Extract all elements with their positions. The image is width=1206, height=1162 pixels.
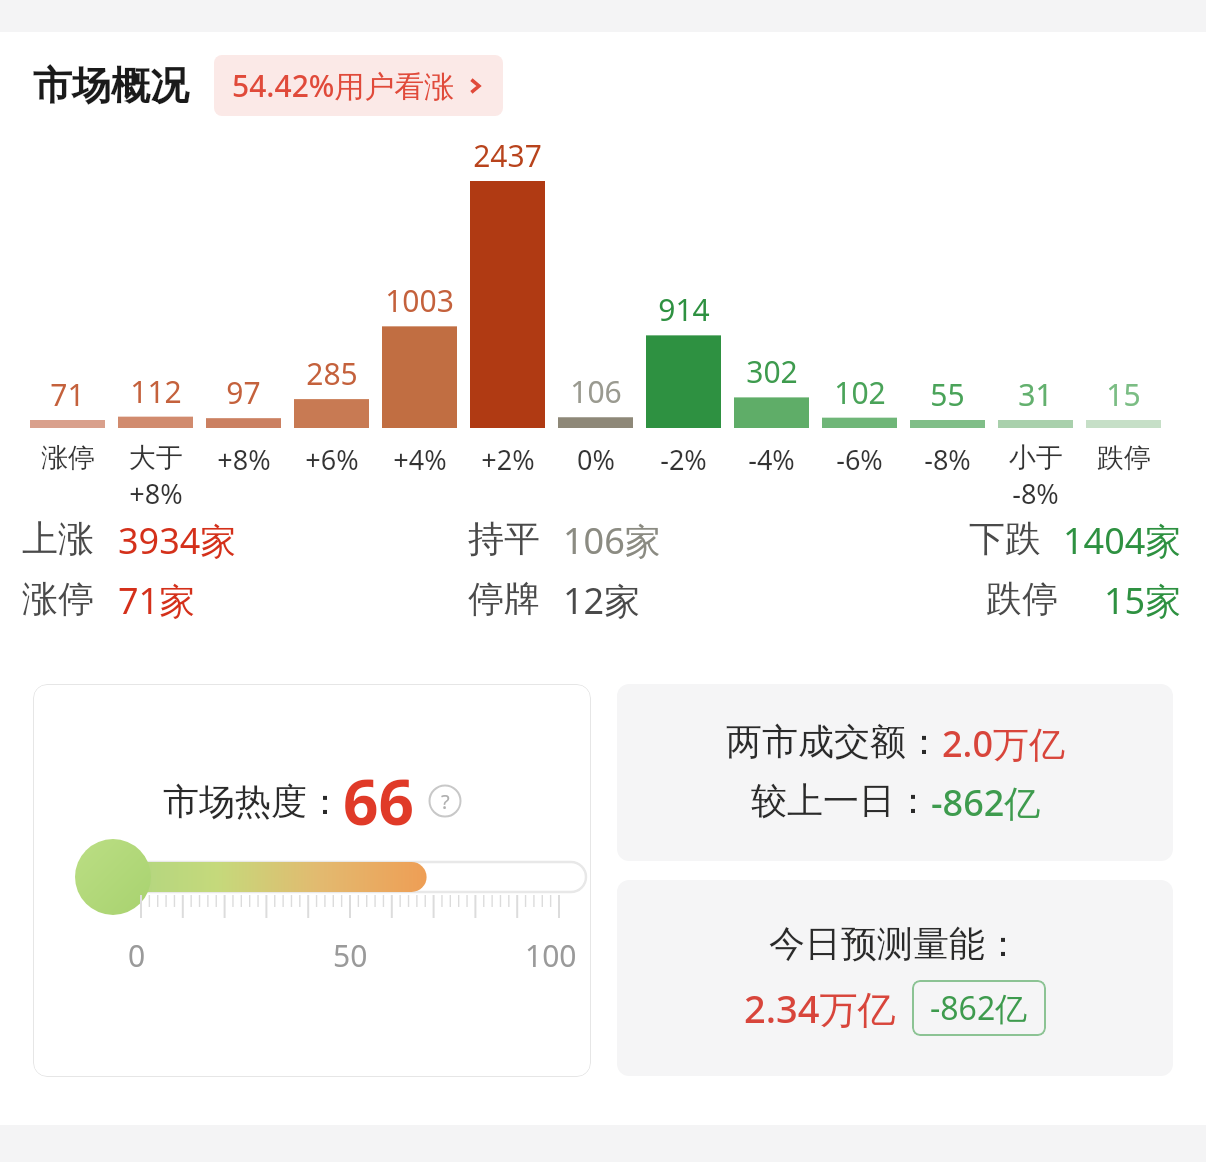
staticText: -8% (1012, 475, 1059, 512)
staticText: 0% (577, 441, 615, 478)
staticText: 54.42%用户看涨 (232, 65, 455, 106)
staticText: 大于 (129, 441, 183, 475)
staticText: 1404家 (1063, 516, 1182, 564)
staticText: 跌停 (986, 576, 1058, 621)
staticText: +8% (217, 441, 271, 478)
staticText: 市场热度： (163, 779, 343, 824)
staticText: 15 (1106, 374, 1141, 415)
staticText: 3934家 (118, 516, 237, 564)
staticText: -2% (660, 441, 707, 478)
staticText: +8% (129, 475, 183, 512)
button[interactable]: 今日预测量能： (617, 880, 1173, 1076)
staticText: +6% (305, 441, 359, 478)
staticText: 两市成交额： (726, 719, 942, 764)
staticText: 15家 (1104, 576, 1182, 624)
staticText: 今日预测量能： (769, 921, 1021, 966)
staticText: -6% (836, 441, 883, 478)
button[interactable]: 市场热度： (33, 684, 591, 1077)
staticText: 102 (834, 372, 886, 413)
staticText: 285 (306, 353, 358, 394)
staticText: 106 (570, 371, 622, 412)
staticText: 0 (128, 935, 146, 976)
staticText: 上涨 (22, 516, 94, 561)
button[interactable]: 帮助 (428, 784, 462, 818)
staticText: 71家 (118, 576, 196, 624)
staticText: +4% (393, 441, 447, 478)
staticText: -8% (924, 441, 971, 478)
staticText: 跌停 (1097, 441, 1151, 475)
staticText: 2.34万亿 (744, 982, 896, 1034)
staticText: 106家 (563, 516, 661, 564)
staticText: 12家 (563, 576, 641, 624)
staticText: 66 (343, 759, 414, 843)
staticText: 914 (658, 289, 710, 330)
staticText: 1003 (385, 280, 454, 321)
staticText: 31 (1018, 374, 1053, 415)
staticText: -862亿 (931, 778, 1041, 827)
staticText: 97 (226, 372, 261, 413)
button[interactable]: 两市成交额： (617, 684, 1173, 861)
staticText: 71 (50, 374, 85, 415)
staticText: 持平 (468, 516, 540, 561)
staticText: -862亿 (930, 986, 1028, 1030)
staticText: 100 (525, 935, 577, 976)
staticText: 2437 (473, 135, 542, 176)
staticText: 涨停 (41, 441, 95, 475)
staticText: 较上一日： (751, 778, 931, 823)
staticText: 302 (746, 351, 798, 392)
staticText: 小于 (1009, 441, 1063, 475)
staticText: 停牌 (468, 576, 540, 621)
staticText: 50 (333, 935, 368, 976)
button[interactable]: 54.42%用户看涨 (214, 55, 503, 116)
staticText: +2% (481, 441, 535, 478)
staticText: 涨停 (22, 576, 94, 621)
staticText: 55 (930, 374, 965, 415)
staticText: -4% (748, 441, 795, 478)
staticText: 112 (130, 371, 182, 412)
staticText: 下跌 (969, 516, 1041, 561)
staticText: 市场概况 (33, 61, 189, 110)
staticText: 2.0万亿 (942, 719, 1065, 768)
staticText: ? (441, 788, 450, 815)
